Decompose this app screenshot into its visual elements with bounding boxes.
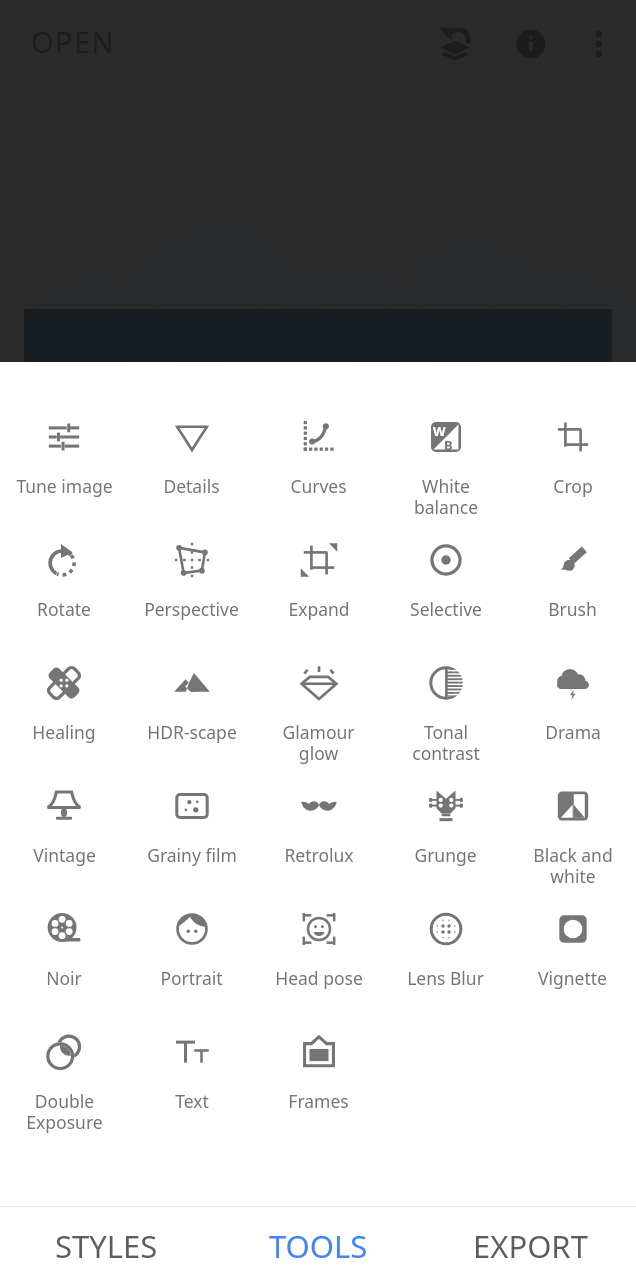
- staticText: Black and white: [533, 843, 613, 888]
- staticText: Frames: [288, 1089, 349, 1113]
- button[interactable]: Drama: [509, 656, 636, 779]
- staticText: Rotate: [37, 597, 91, 621]
- staticText: Retrolux: [284, 843, 354, 867]
- button[interactable]: Undo: [424, 13, 486, 75]
- staticText: W: [433, 422, 446, 440]
- button[interactable]: Grunge: [382, 779, 509, 902]
- button[interactable]: Retrolux: [255, 779, 382, 902]
- staticText: STYLES: [55, 1225, 158, 1267]
- button[interactable]: STYLES: [0, 1207, 212, 1280]
- button[interactable]: Lens Blur: [382, 902, 509, 1025]
- staticText: Vintage: [33, 843, 96, 867]
- staticText: Healing: [32, 720, 96, 744]
- button[interactable]: Tonal contrast: [382, 656, 509, 779]
- button[interactable]: EXPORT: [424, 1207, 636, 1280]
- button[interactable]: Frames: [255, 1025, 382, 1148]
- staticText: Double Exposure: [26, 1089, 103, 1134]
- button[interactable]: HDR-scape: [128, 656, 255, 779]
- button[interactable]: Curves: [255, 410, 382, 533]
- staticText: Grunge: [414, 843, 477, 867]
- staticText: Grainy film: [147, 843, 237, 867]
- staticText: Tune image: [16, 474, 113, 498]
- staticText: Drama: [545, 720, 601, 744]
- button[interactable]: Grainy film: [128, 779, 255, 902]
- button[interactable]: Details: [128, 410, 255, 533]
- staticText: Expand: [288, 597, 350, 621]
- button[interactable]: Crop: [509, 410, 636, 533]
- button[interactable]: Vintage: [0, 779, 128, 902]
- staticText: EXPORT: [473, 1225, 588, 1267]
- staticText: White balance: [414, 474, 478, 519]
- button[interactable]: Noir: [0, 902, 128, 1025]
- button[interactable]: Rotate: [0, 533, 128, 656]
- staticText: TOOLS: [269, 1225, 368, 1267]
- button[interactable]: Selective: [382, 533, 509, 656]
- staticText: Curves: [290, 474, 347, 498]
- staticText: Perspective: [144, 597, 239, 621]
- button[interactable]: Double Exposure: [0, 1025, 128, 1148]
- staticText: Vignette: [538, 966, 607, 990]
- staticText: Glamour glow: [282, 720, 355, 765]
- button[interactable]: Black and white: [509, 779, 636, 902]
- button[interactable]: Expand: [255, 533, 382, 656]
- staticText: Noir: [46, 966, 82, 990]
- button[interactable]: Healing: [0, 656, 128, 779]
- button[interactable]: Info: [500, 13, 562, 75]
- staticText: B: [444, 436, 453, 454]
- button[interactable]: Vignette: [509, 902, 636, 1025]
- button[interactable]: Perspective: [128, 533, 255, 656]
- staticText: Lens Blur: [407, 966, 484, 990]
- staticText: Tonal contrast: [412, 720, 480, 765]
- button[interactable]: Head pose: [255, 902, 382, 1025]
- button[interactable]: Glamour glow: [255, 656, 382, 779]
- staticText: Selective: [410, 597, 482, 621]
- button[interactable]: OPEN: [31, 0, 115, 83]
- button[interactable]: Tune image: [0, 410, 128, 533]
- button[interactable]: Brush: [509, 533, 636, 656]
- staticText: Head pose: [275, 966, 363, 990]
- staticText: Text: [175, 1089, 209, 1113]
- button[interactable]: W: [382, 410, 509, 533]
- staticText: Portrait: [160, 966, 223, 990]
- staticText: HDR-scape: [147, 720, 237, 744]
- staticText: Crop: [553, 474, 593, 498]
- staticText: Details: [163, 474, 220, 498]
- staticText: Brush: [548, 597, 597, 621]
- button[interactable]: Text: [128, 1025, 255, 1148]
- button[interactable]: Portrait: [128, 902, 255, 1025]
- staticText: OPEN: [31, 22, 115, 61]
- button[interactable]: TOOLS: [212, 1207, 424, 1280]
